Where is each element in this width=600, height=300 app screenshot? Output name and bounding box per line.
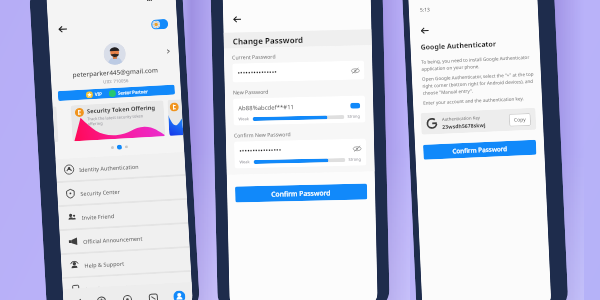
staticText: Confirm New Password <box>234 130 291 138</box>
staticText: Weak <box>239 159 250 164</box>
staticText: Track the latest security token offering <box>87 113 145 126</box>
button[interactable]: Dark mode toggle <box>151 19 168 30</box>
staticText: 5:13 <box>420 6 430 14</box>
staticText: Security Token Offering <box>87 104 156 115</box>
staticText: Current Password <box>232 52 276 60</box>
button[interactable]: Invite Friend <box>58 200 188 229</box>
staticText: Enter your account and the authenticatio… <box>423 95 524 106</box>
staticText: Identity Authentication <box>79 163 139 173</box>
staticText: Strong <box>347 114 360 119</box>
button[interactable]: Security Center <box>57 176 187 205</box>
staticText: Ab88%abcdef**#11 <box>238 103 294 112</box>
button[interactable]: Trade <box>88 286 115 300</box>
staticText: Official Announcement <box>83 235 143 245</box>
button[interactable]: Confirm Password <box>423 140 537 160</box>
button[interactable]: Confirm Password <box>235 183 367 202</box>
button[interactable]: Profile details <box>164 48 172 55</box>
button[interactable]: Hide password <box>350 103 360 109</box>
staticText: UID: 710056 <box>51 74 180 87</box>
staticText: Security Center <box>80 188 121 197</box>
button[interactable]: Official Announcement <box>59 224 189 253</box>
button[interactable]: Help & Support <box>61 248 191 277</box>
staticText: New Password <box>233 88 269 95</box>
button[interactable]: Show password <box>353 145 361 153</box>
button[interactable]: Profile <box>166 282 193 300</box>
staticText: •••••••••••••••• <box>239 145 282 156</box>
staticText: Strong <box>348 157 361 162</box>
button[interactable]: Identity Authentication <box>55 152 185 181</box>
button[interactable]: Markets <box>63 288 89 300</box>
button[interactable]: Legal Document <box>62 272 192 300</box>
staticText: VIP <box>95 91 102 97</box>
staticText: Authentication Key <box>442 114 481 122</box>
button[interactable]: History <box>140 283 167 300</box>
staticText: Copy <box>514 116 526 124</box>
staticText: peterparker445@gmail.com <box>51 64 180 80</box>
staticText: To being, you need to install Google Aut… <box>421 54 538 72</box>
button[interactable]: Authentication Key <box>420 108 536 135</box>
button[interactable]: Copy <box>509 113 531 127</box>
staticText: Senior Partner <box>118 88 148 96</box>
button[interactable]: Wallet <box>114 285 141 300</box>
staticText: Weak <box>238 116 249 121</box>
staticText: Change Password <box>233 34 304 46</box>
staticText: 23wsdh5678skwj <box>442 121 486 130</box>
staticText: Invite Friend <box>82 212 115 221</box>
button[interactable]: Back <box>57 23 69 35</box>
staticText: Google Authenticator <box>420 39 497 53</box>
staticText: ••••••••••••••• <box>237 67 277 78</box>
staticText: Help & Support <box>84 260 125 269</box>
button[interactable]: Back <box>420 25 430 36</box>
button[interactable]: Security Token Offering <box>70 100 165 141</box>
button[interactable]: Back <box>232 14 242 24</box>
staticText: Confirm Password <box>271 188 331 199</box>
button[interactable]: Show password <box>351 67 359 75</box>
staticText: Confirm Password <box>452 144 507 155</box>
staticText: Open Google Authenticator, select the "+… <box>422 70 539 96</box>
